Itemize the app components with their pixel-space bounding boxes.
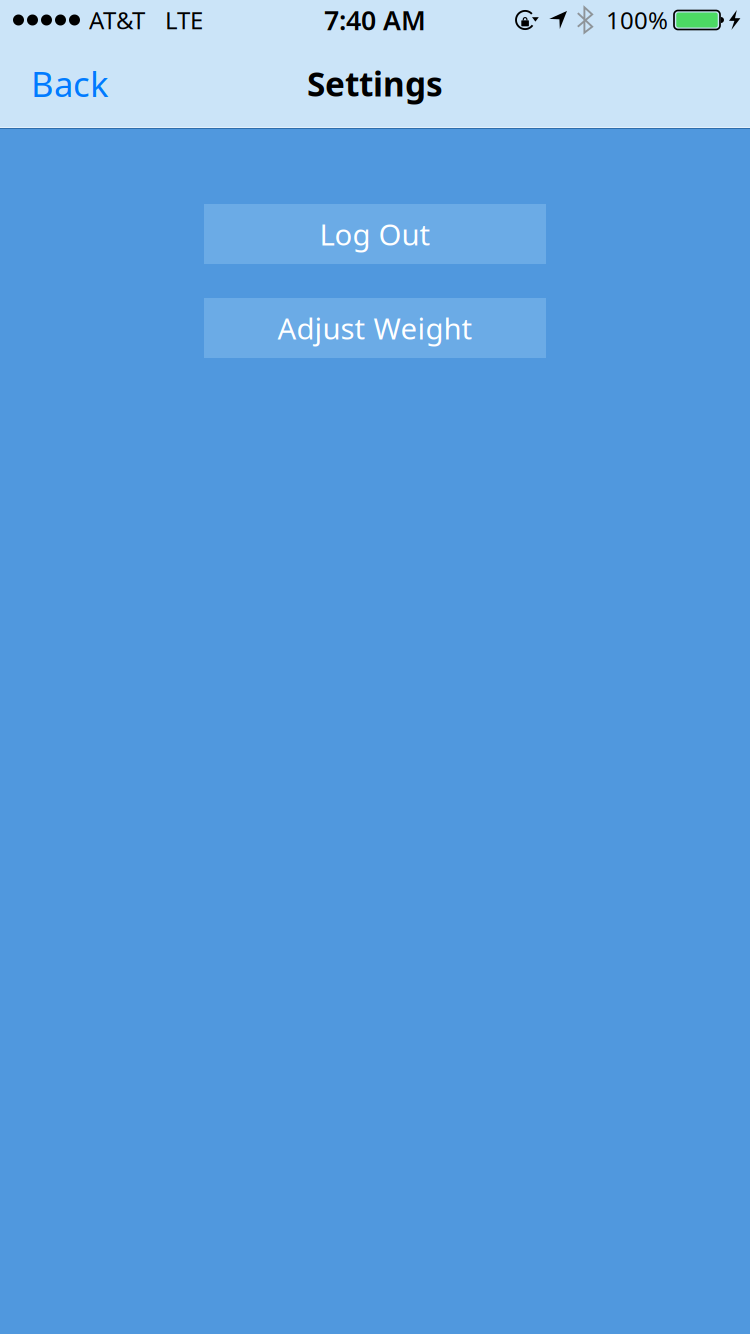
button[interactable]: Back [15,46,125,120]
staticText: Log Out [319,214,430,253]
button[interactable]: Log Out [204,204,546,264]
staticText: LTE [165,4,203,36]
staticText: Settings [307,61,443,106]
staticText: Adjust Weight [277,308,472,347]
staticText: 7:40 AM [324,2,426,38]
staticText: Back [31,60,109,106]
button[interactable]: Adjust Weight [204,298,546,358]
staticText: 100% [606,4,668,36]
staticText: AT&T [89,4,145,36]
